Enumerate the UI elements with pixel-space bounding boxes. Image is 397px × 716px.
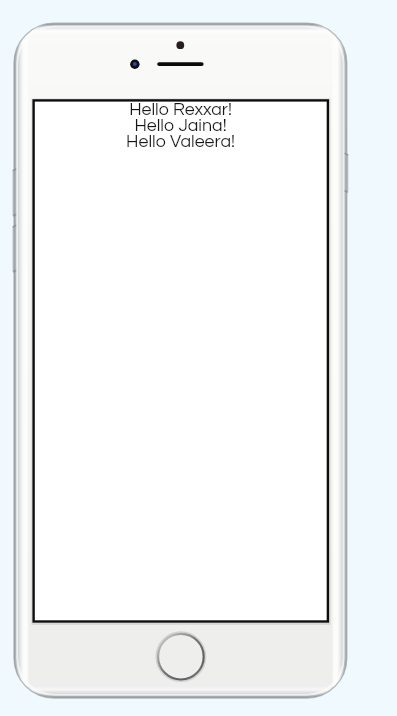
button[interactable]: Hello Rexxar! Hello Jaina! Hello Valeera… [32,99,329,623]
button[interactable]: Home [157,633,205,681]
button[interactable]: Volume [8,225,20,273]
staticText: Hello Rexxar! Hello Jaina! Hello Valeera… [32,100,329,151]
button[interactable]: Silent mode switch [8,168,20,216]
button[interactable]: Power [341,153,353,193]
